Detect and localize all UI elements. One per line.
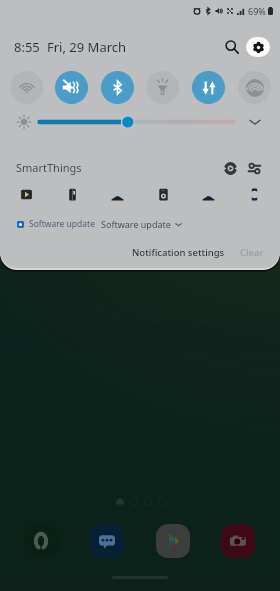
staticText: 8:55 [14,38,40,56]
button[interactable]: Device 3 [108,185,126,203]
button[interactable]: Device 1 [17,185,35,203]
staticText: Notification settings [132,246,225,259]
staticText: Fri, 29 March [47,38,127,56]
button[interactable]: Play Store [156,524,190,558]
button[interactable]: Settings [246,37,270,57]
button[interactable]: Sound mode [55,71,88,104]
button[interactable]: Phone [24,524,58,558]
button[interactable]: Expand quick settings [245,112,265,132]
button[interactable]: Bluetooth [101,71,134,104]
button[interactable]: SmartThings settings [244,158,264,178]
staticText: 69% [248,5,266,17]
button[interactable]: Spotify [238,71,271,104]
button[interactable]: Device 4 [154,185,172,203]
staticText: Clear [240,246,264,259]
button[interactable]: Messages [90,524,124,558]
button[interactable]: Mobile data [192,71,225,104]
button[interactable]: Flashlight [146,71,179,104]
staticText: Software update [29,218,95,230]
button[interactable]: Notification settings [128,243,229,262]
button[interactable]: Camera [221,524,255,558]
staticText: Software update [101,218,171,230]
button[interactable]: Media output [220,158,240,178]
button[interactable]: Clear [236,243,268,262]
staticText: SmartThings [16,160,82,175]
button[interactable]: Device 2 [63,185,81,203]
button[interactable]: Brightness [37,114,236,130]
button[interactable]: Auto brightness [14,112,34,132]
button[interactable]: Search [219,34,245,60]
button[interactable]: Wi-Fi [10,71,43,104]
button[interactable]: Device 6 [245,185,263,203]
button[interactable]: Device 5 [199,185,217,203]
